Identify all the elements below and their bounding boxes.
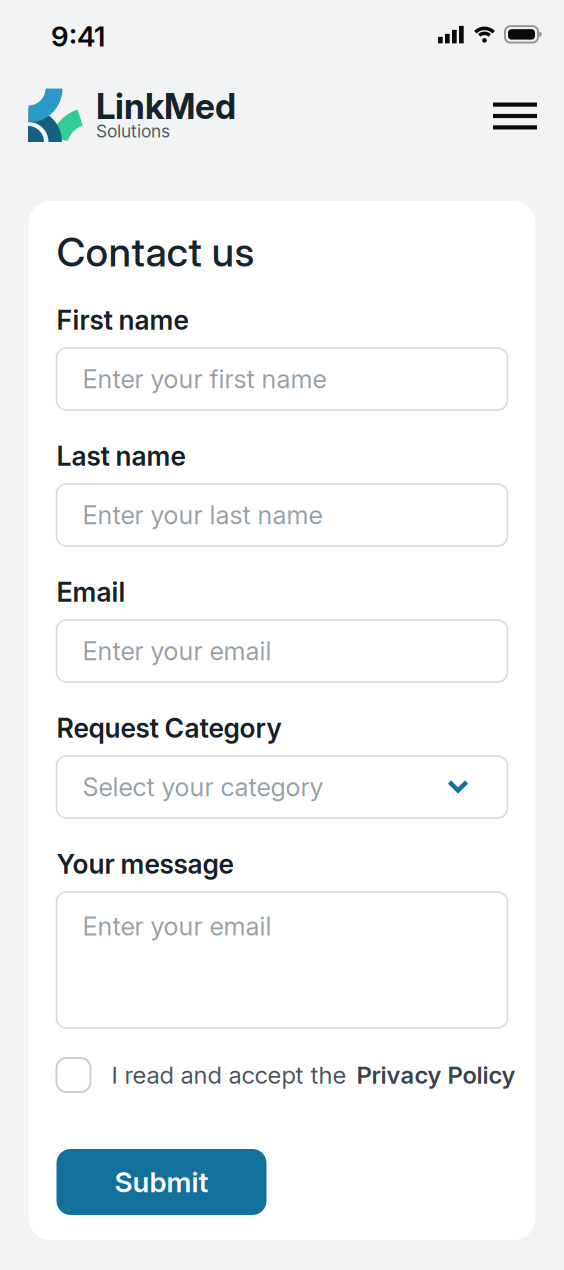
- staticText: Enter your last name: [82, 504, 322, 526]
- staticText: Solutions: [96, 124, 170, 139]
- staticText: Request Category: [56, 716, 281, 740]
- button[interactable]: I read and accept the Privacy Policy: [56, 1058, 90, 1092]
- button[interactable]: Your message: [56, 892, 507, 1028]
- staticText: Email: [56, 580, 125, 604]
- staticText: Enter your email: [82, 640, 271, 662]
- button[interactable]: Submit: [56, 1149, 266, 1215]
- staticText: First name: [56, 308, 188, 332]
- button[interactable]: Email: [56, 620, 507, 682]
- staticText: Enter your email: [82, 915, 271, 937]
- button[interactable]: Privacy Policy: [346, 1064, 515, 1086]
- staticText: Select your category: [82, 776, 323, 798]
- staticText: Your message: [56, 852, 233, 876]
- staticText: Privacy Policy: [356, 1064, 515, 1086]
- staticText: Contact us: [56, 234, 254, 270]
- button[interactable]: Select your category: [56, 756, 507, 818]
- staticText: Submit: [114, 1170, 208, 1194]
- button[interactable]: Menu: [493, 100, 564, 129]
- button[interactable]: First name: [56, 348, 507, 410]
- staticText: Last name: [56, 444, 185, 468]
- staticText: LinkMed: [96, 91, 236, 122]
- staticText: 9:41: [51, 24, 105, 49]
- button[interactable]: Last name: [56, 484, 507, 546]
- staticText: I read and accept the: [111, 1064, 346, 1086]
- staticText: Enter your first name: [82, 368, 326, 390]
